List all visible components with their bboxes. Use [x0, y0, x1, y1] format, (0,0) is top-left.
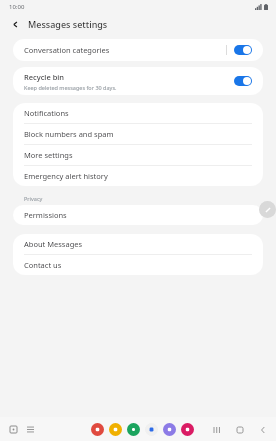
staticText: Notifications — [24, 108, 69, 118]
staticText: Messages settings — [28, 18, 108, 30]
button[interactable]: Permissions — [13, 205, 263, 225]
staticText: 10:00 — [9, 3, 25, 11]
button[interactable]: Toggle on — [234, 76, 252, 86]
button[interactable]: Notifications — [13, 103, 263, 123]
button[interactable]: App — [127, 423, 140, 436]
button[interactable]: App — [109, 423, 122, 436]
button[interactable]: Conversation categories — [13, 39, 263, 61]
staticText: More settings — [24, 150, 73, 160]
button[interactable]: Back — [7, 16, 23, 32]
button[interactable]: About Messages — [13, 234, 263, 254]
staticText: Conversation categories — [24, 45, 110, 55]
staticText: Contact us — [24, 260, 62, 270]
button[interactable]: Recycle bin — [13, 67, 263, 95]
button[interactable]: App — [145, 423, 158, 436]
button[interactable]: Home — [233, 423, 246, 436]
button[interactable]: App — [163, 423, 176, 436]
button[interactable]: Toggle on — [234, 45, 252, 55]
button[interactable]: Contact us — [13, 255, 263, 275]
staticText: Recycle bin — [24, 72, 65, 82]
button[interactable]: Edit — [259, 201, 276, 218]
staticText: Permissions — [24, 210, 67, 220]
button[interactable]: Recent apps — [210, 423, 223, 436]
staticText: Privacy — [24, 195, 43, 202]
button[interactable]: Block numbers and spam — [13, 124, 263, 144]
staticText: Block numbers and spam — [24, 129, 114, 139]
button[interactable]: Multi window — [7, 423, 19, 435]
button[interactable]: App — [91, 423, 104, 436]
button[interactable]: App — [181, 423, 194, 436]
staticText: Emergency alert history — [24, 171, 108, 181]
button[interactable]: Back — [256, 423, 269, 436]
button[interactable]: Emergency alert history — [13, 166, 263, 186]
button[interactable]: More settings — [13, 145, 263, 165]
staticText: About Messages — [24, 239, 83, 249]
button[interactable]: App list — [24, 423, 36, 435]
staticText: Keep deleted messages for 30 days. — [24, 84, 117, 91]
